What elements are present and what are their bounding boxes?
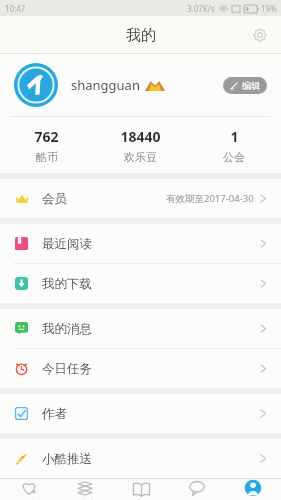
staticText: 会员	[42, 191, 67, 207]
button[interactable]: shangguan	[0, 54, 281, 116]
staticText: 3.07K/s	[187, 3, 215, 14]
staticText: 最近阅读	[42, 236, 92, 252]
staticText: 我的	[126, 26, 156, 45]
staticText: 10:47	[5, 3, 26, 14]
staticText: 我的下载	[42, 276, 92, 292]
button[interactable]: 会员	[0, 179, 281, 218]
staticText: 小酷推送	[42, 451, 92, 467]
staticText: 今日任务	[42, 361, 92, 377]
button[interactable]: 我的	[225, 479, 281, 500]
staticText: 有效期至2017-04-30	[166, 192, 254, 205]
button[interactable]: 18440	[93, 117, 187, 173]
staticText: shangguan	[71, 76, 140, 94]
staticText: 酷币	[36, 150, 58, 164]
button[interactable]: 我的消息	[0, 309, 281, 348]
staticText: 编辑	[242, 80, 260, 91]
staticText: 作者	[42, 406, 67, 422]
button[interactable]: 社区	[169, 479, 225, 500]
staticText: 19%	[261, 3, 277, 14]
staticText: 1	[230, 127, 239, 146]
staticText: 看看	[77, 499, 94, 500]
button[interactable]: Settings	[247, 22, 273, 48]
staticText: 追书	[20, 499, 37, 500]
staticText: 18440	[120, 127, 161, 146]
staticText: 762	[34, 127, 59, 146]
button[interactable]: 看看	[57, 479, 113, 500]
button[interactable]: 小酷推送	[0, 439, 281, 478]
button[interactable]: 追书	[0, 479, 57, 500]
button[interactable]: 编辑	[223, 77, 267, 94]
button[interactable]: 我的下载	[0, 264, 281, 303]
button[interactable]: 今日任务	[0, 349, 281, 388]
staticText: 公会	[223, 150, 245, 164]
button[interactable]: 作者	[0, 394, 281, 433]
staticText: 欢乐豆	[124, 150, 157, 164]
button[interactable]: 最近阅读	[0, 224, 281, 263]
staticText: 我的消息	[42, 321, 92, 337]
button[interactable]: Library	[113, 479, 169, 500]
button[interactable]: 1	[187, 117, 281, 173]
button[interactable]: 762	[0, 117, 93, 173]
